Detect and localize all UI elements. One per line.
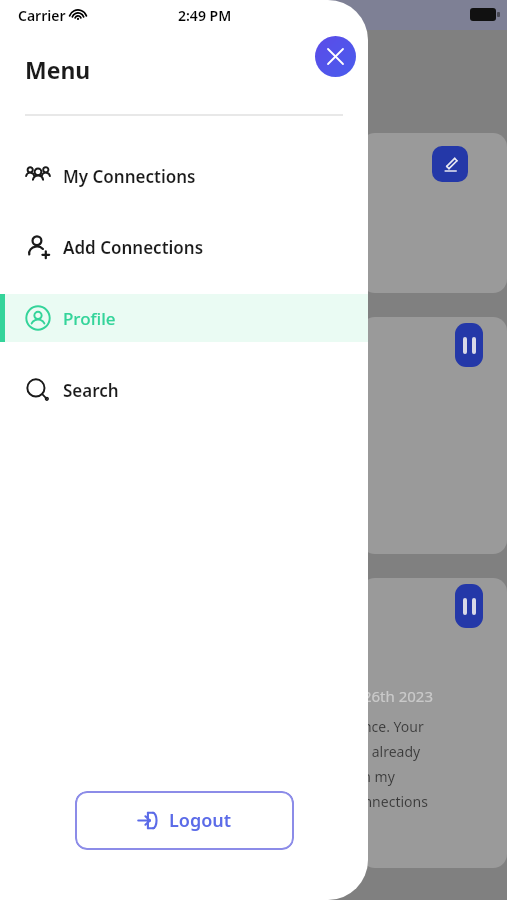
button[interactable]: Add Connections bbox=[0, 223, 368, 271]
staticText: 2:49 PM bbox=[178, 6, 232, 25]
button[interactable]: Logout bbox=[75, 791, 294, 850]
button[interactable]: My Connections bbox=[0, 152, 368, 200]
staticText: m already bbox=[355, 742, 421, 761]
button[interactable]: Pause bbox=[455, 584, 483, 628]
staticText: Carrier bbox=[18, 6, 66, 25]
staticText: My Connections bbox=[63, 165, 196, 188]
staticText: , 26th 2023 bbox=[355, 686, 433, 706]
staticText: in my bbox=[355, 767, 395, 786]
button[interactable]: Profile bbox=[0, 294, 368, 342]
staticText: Profile bbox=[63, 307, 116, 330]
staticText: Menu bbox=[25, 54, 91, 85]
staticText: ence. Your bbox=[355, 717, 424, 736]
button[interactable] bbox=[361, 578, 507, 868]
button[interactable] bbox=[361, 317, 507, 554]
staticText: onnections bbox=[355, 792, 428, 811]
button[interactable] bbox=[361, 133, 507, 293]
staticText: Add Connections bbox=[63, 236, 204, 259]
staticText: Logout bbox=[169, 808, 232, 833]
button[interactable]: Search bbox=[0, 366, 368, 414]
button[interactable]: Close menu bbox=[315, 36, 356, 77]
button[interactable]: Pause bbox=[455, 323, 483, 367]
button[interactable]: Edit bbox=[432, 146, 468, 182]
staticText: Search bbox=[63, 379, 119, 402]
